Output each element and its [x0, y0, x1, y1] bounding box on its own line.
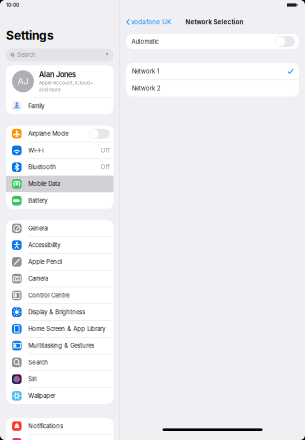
staticText: AJ [17, 76, 28, 87]
staticText: Automatic [131, 38, 158, 45]
button[interactable]: Battery [6, 193, 113, 209]
staticText: Accessibility [28, 241, 60, 249]
staticText: vodafone UK [131, 18, 171, 26]
staticText: Home Screen & App Library [28, 325, 105, 332]
button[interactable]: Notifications [6, 418, 113, 434]
staticText: Airplane Mode [28, 130, 68, 137]
button[interactable]: Wi-Fi [6, 142, 113, 158]
button[interactable]: Display & Brightness [6, 304, 113, 320]
staticText: Multitasking & Gestures [28, 342, 94, 349]
staticText: Off [101, 163, 110, 171]
staticText: Wi-Fi [28, 147, 43, 154]
button[interactable]: Airplane Mode [6, 126, 113, 142]
button[interactable]: Search [6, 354, 113, 370]
staticText: Display & Brightness [28, 308, 85, 316]
button[interactable]: Apple Pencil [6, 254, 113, 270]
staticText: Search [28, 359, 48, 366]
button[interactable]: Home Screen & App Library [6, 321, 113, 337]
staticText: Search [17, 51, 35, 58]
staticText: Apple Pencil [28, 258, 62, 265]
staticText: Siri [28, 375, 36, 383]
button[interactable]: Wallpaper [6, 388, 113, 404]
staticText: General [28, 225, 48, 232]
button[interactable]: AJ [6, 65, 113, 97]
staticText: and more [39, 87, 61, 93]
staticText: Battery [28, 197, 47, 204]
staticText: Network Selection [185, 18, 243, 26]
staticText: Camera [28, 275, 48, 282]
button[interactable]: Control Centre [6, 287, 113, 303]
button[interactable]: Network 2 [126, 80, 299, 96]
staticText: Network 2 [132, 85, 161, 92]
button[interactable]: Sounds [6, 435, 113, 440]
staticText: Alan Jones [39, 70, 76, 79]
button[interactable]: Family [6, 98, 113, 114]
button[interactable]: Multitasking & Gestures [6, 337, 113, 354]
button[interactable]: Accessibility [6, 237, 113, 253]
staticText: Mobile Data [28, 180, 60, 188]
button[interactable]: General [6, 220, 113, 236]
staticText: 10:00 [6, 2, 19, 8]
staticText: Notifications [28, 422, 63, 430]
staticText: Off [101, 147, 110, 154]
staticText: Wallpaper [28, 392, 55, 399]
button[interactable]: Camera [6, 270, 113, 287]
staticText: Bluetooth [28, 163, 56, 171]
staticText: Apple Account, iCloud+ [39, 80, 93, 86]
staticText: Family [28, 102, 44, 110]
button[interactable]: Mobile Data [6, 176, 113, 192]
button[interactable]: Siri [6, 371, 113, 387]
staticText: Network 1 [132, 68, 159, 75]
button[interactable]: Bluetooth [6, 159, 113, 175]
staticText: Control Centre [28, 292, 69, 299]
button[interactable]: vodafone UK [125, 14, 172, 30]
staticText: Settings [6, 28, 54, 42]
button[interactable]: Network 1 [126, 63, 299, 79]
